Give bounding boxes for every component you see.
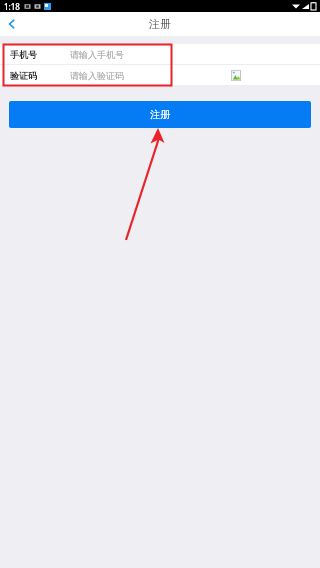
- button[interactable]: Back: [0, 12, 24, 36]
- other: Captcha image: [231, 70, 242, 81]
- button[interactable]: 注册: [9, 101, 311, 128]
- staticText: 验证码: [10, 70, 37, 81]
- staticText: 注册: [150, 108, 170, 121]
- button[interactable]: 验证码: [0, 65, 320, 85]
- staticText: 1:18: [4, 1, 20, 12]
- staticText: 注册: [149, 17, 171, 31]
- staticText: 请输入手机号: [70, 49, 124, 60]
- staticText: 手机号: [10, 49, 37, 60]
- staticText: 请输入验证码: [70, 70, 124, 81]
- button[interactable]: 手机号: [0, 44, 320, 64]
